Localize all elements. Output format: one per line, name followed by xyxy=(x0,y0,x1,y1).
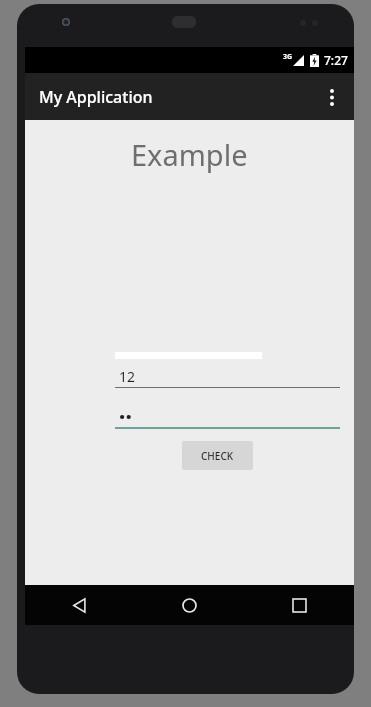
button[interactable]: More options xyxy=(310,75,354,119)
button[interactable]: Recent apps xyxy=(244,585,354,625)
staticText: 12 xyxy=(119,367,136,386)
button[interactable]: Home xyxy=(134,585,244,625)
button[interactable]: Back xyxy=(25,585,134,625)
button[interactable]: 12 xyxy=(115,366,340,388)
button[interactable]: CHECK xyxy=(182,441,253,470)
staticText: 7:27 xyxy=(324,52,348,68)
staticText: Example xyxy=(131,135,248,174)
staticText: My Application xyxy=(39,86,153,108)
staticText: CHECK xyxy=(201,449,234,463)
button[interactable] xyxy=(115,406,340,429)
staticText: 3G xyxy=(283,52,293,62)
